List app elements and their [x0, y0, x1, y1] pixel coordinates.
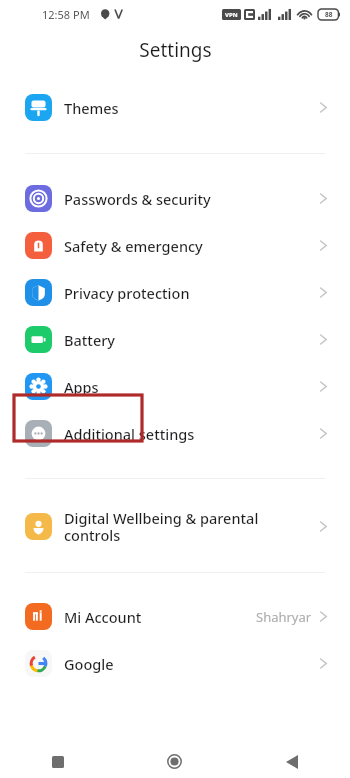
staticText: Mi Account [64, 607, 256, 627]
staticText: Themes [64, 98, 319, 118]
staticText: 88 [325, 10, 333, 19]
button[interactable]: Mi Account [0, 593, 350, 640]
button[interactable]: Digital Wellbeing & parental controls [0, 500, 350, 552]
staticText: Digital Wellbeing & parental controls [64, 508, 319, 545]
button[interactable]: Home [116, 745, 233, 778]
button[interactable]: Google [0, 640, 350, 687]
staticText: Apps [64, 377, 319, 397]
button[interactable]: Additional settings [0, 410, 350, 457]
button[interactable]: Privacy protection [0, 269, 350, 316]
button[interactable]: Apps [0, 363, 350, 410]
staticText: Safety & emergency [64, 236, 319, 256]
staticText: Shahryar [256, 608, 312, 626]
staticText: Settings [139, 37, 212, 63]
staticText: Battery [64, 330, 319, 350]
staticText: VPN [225, 11, 238, 19]
button[interactable]: Battery [0, 316, 350, 363]
button[interactable]: Themes [0, 84, 350, 131]
staticText: Privacy protection [64, 283, 319, 303]
button[interactable]: Passwords & security [0, 175, 350, 222]
button[interactable]: Recent apps [0, 745, 116, 778]
staticText: Additional settings [64, 424, 319, 444]
staticText: Passwords & security [64, 189, 319, 209]
button[interactable]: Back [233, 745, 350, 778]
staticText: Google [64, 654, 319, 674]
button[interactable]: Safety & emergency [0, 222, 350, 269]
staticText: 12:58 PM [42, 7, 90, 22]
